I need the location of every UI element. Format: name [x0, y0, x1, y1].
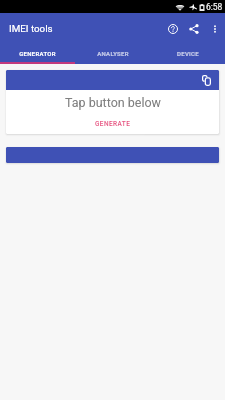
- staticText: ANALYSER: [97, 50, 129, 57]
- staticText: DEVICE: [177, 50, 199, 57]
- button[interactable]: More options: [204, 18, 225, 39]
- button[interactable]: Copy: [199, 73, 213, 87]
- staticText: 6:58: [206, 2, 223, 12]
- staticText: GENERATE: [95, 120, 131, 128]
- button[interactable]: Help: [161, 17, 184, 40]
- staticText: Tap button below: [65, 95, 161, 110]
- button[interactable]: GENERATOR: [0, 44, 75, 64]
- button[interactable]: GENERATE: [87, 116, 139, 132]
- button[interactable]: ANALYSER: [75, 44, 150, 64]
- button[interactable]: DEVICE: [150, 44, 225, 64]
- staticText: GENERATOR: [19, 50, 56, 57]
- button[interactable]: Share: [182, 17, 205, 40]
- staticText: IMEI tools: [9, 23, 53, 34]
